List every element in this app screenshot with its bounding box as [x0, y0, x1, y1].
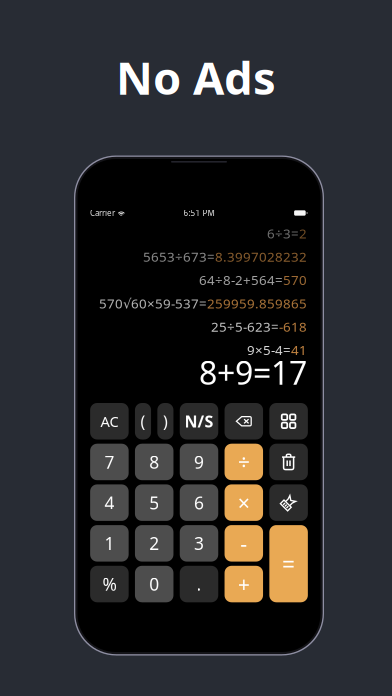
button[interactable]: ) — [157, 403, 173, 439]
staticText: . — [196, 572, 201, 595]
staticText: 6÷3= — [267, 224, 299, 242]
staticText: 8+9=17 — [199, 351, 307, 393]
staticText: 8 — [149, 450, 159, 473]
button[interactable]: - — [224, 525, 263, 562]
button[interactable]: . — [180, 566, 218, 602]
staticText: 570√60×59-537= — [99, 294, 207, 312]
staticText: 2 — [149, 532, 159, 555]
button[interactable]: 2 — [135, 525, 173, 562]
staticText: 9 — [194, 450, 204, 473]
staticText: 25÷5-623= — [211, 318, 279, 335]
staticText: ) — [163, 411, 168, 432]
staticText: 5653÷673= — [143, 248, 215, 265]
staticText: 0 — [149, 572, 159, 595]
button[interactable]: AC — [90, 403, 129, 439]
button[interactable]: 1 — [90, 525, 129, 562]
button[interactable]: 7 — [90, 444, 129, 480]
staticText: -618 — [279, 318, 307, 335]
staticText: 41 — [291, 341, 307, 359]
button[interactable]: 4 — [90, 484, 129, 521]
staticText: ÷ — [238, 448, 250, 476]
staticText: 6 — [194, 491, 204, 514]
staticText: 4 — [104, 491, 114, 514]
button[interactable]: 5 — [135, 484, 173, 521]
staticText: N/S — [184, 411, 213, 432]
staticText: 570 — [283, 271, 307, 289]
button[interactable]: ( — [135, 403, 151, 439]
button[interactable]: 9 — [180, 444, 218, 480]
staticText: 9×5-4= — [247, 341, 291, 359]
staticText: 259959.859865 — [207, 294, 307, 312]
button[interactable]: ÷ — [224, 444, 263, 480]
staticText: 7 — [104, 450, 114, 473]
staticText: + — [238, 570, 250, 598]
staticText: 2 — [299, 224, 307, 242]
staticText: No Ads — [116, 47, 276, 107]
button[interactable]: 8 — [135, 444, 173, 480]
button[interactable]: + — [224, 566, 263, 602]
staticText: 1 — [104, 532, 114, 555]
staticText: - — [240, 529, 247, 557]
button[interactable]: 0 — [135, 566, 173, 602]
staticText: AC — [100, 411, 118, 431]
staticText: % — [102, 572, 116, 595]
staticText: Carrier — [90, 208, 115, 218]
staticText: ( — [140, 411, 145, 432]
button[interactable]: Theme — [269, 484, 308, 521]
staticText: 5 — [149, 491, 159, 514]
button[interactable]: = — [269, 525, 308, 602]
staticText: 64÷8-2+564= — [199, 271, 283, 289]
button[interactable]: 3 — [180, 525, 218, 562]
staticText: × — [238, 488, 250, 517]
staticText: 3 — [194, 532, 204, 555]
staticText: = — [282, 549, 295, 579]
staticText: 6:51 PM — [183, 208, 214, 218]
staticText: 8.3997028232 — [215, 248, 307, 265]
button[interactable]: 6 — [180, 484, 218, 521]
button[interactable]: % — [90, 566, 129, 602]
button[interactable]: Delete — [225, 403, 263, 439]
button[interactable]: N/S — [180, 403, 218, 439]
button[interactable]: More — [269, 403, 308, 439]
button[interactable]: × — [224, 484, 263, 521]
button[interactable]: Clear history — [269, 444, 308, 480]
